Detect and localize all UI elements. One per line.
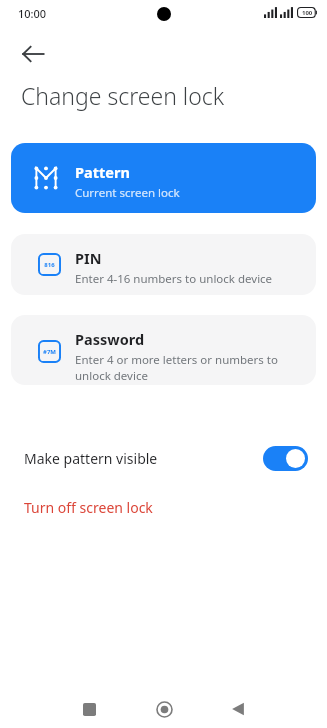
staticText: Pattern [75, 162, 130, 182]
staticText: #7M [43, 348, 56, 356]
staticText: 10:00 [18, 6, 47, 21]
button[interactable]: Turn off screen lock [0, 490, 327, 524]
staticText: Password [75, 329, 145, 349]
staticText: Make pattern visible [24, 449, 158, 468]
staticText: 100 [302, 9, 313, 17]
button[interactable]: Back [223, 694, 253, 724]
staticText: Enter 4-16 numbers to unlock device [75, 271, 273, 287]
staticText: Current screen lock [75, 185, 180, 201]
staticText: Change screen lock [21, 80, 225, 111]
button[interactable]: Recent apps [74, 694, 104, 724]
button[interactable]: Make pattern visible [0, 436, 327, 481]
staticText: 816 [44, 261, 55, 269]
staticText: Turn off screen lock [24, 498, 153, 517]
staticText: Enter 4 or more letters or numbers to un… [75, 352, 307, 383]
button[interactable]: 816 [11, 234, 316, 295]
button[interactable]: #7M [11, 315, 316, 385]
staticText: PIN [75, 248, 102, 268]
button[interactable]: Home [149, 694, 179, 724]
button[interactable]: Back [13, 34, 53, 74]
button[interactable]: Pattern [11, 143, 316, 213]
